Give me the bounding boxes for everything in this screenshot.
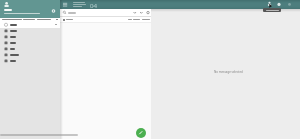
button[interactable] [0,18,60,22]
button[interactable] [60,9,151,16]
button[interactable] [136,128,146,138]
button[interactable] [0,0,60,18]
button[interactable] [0,58,60,64]
button[interactable] [0,34,60,40]
button[interactable] [0,46,60,52]
staticText: No message selected [214,70,243,74]
button[interactable] [0,28,60,34]
button[interactable] [0,52,60,58]
button[interactable] [61,1,69,8]
button[interactable] [0,22,60,28]
staticText: 04 [90,1,98,9]
button[interactable] [60,17,151,23]
button[interactable] [0,40,60,46]
